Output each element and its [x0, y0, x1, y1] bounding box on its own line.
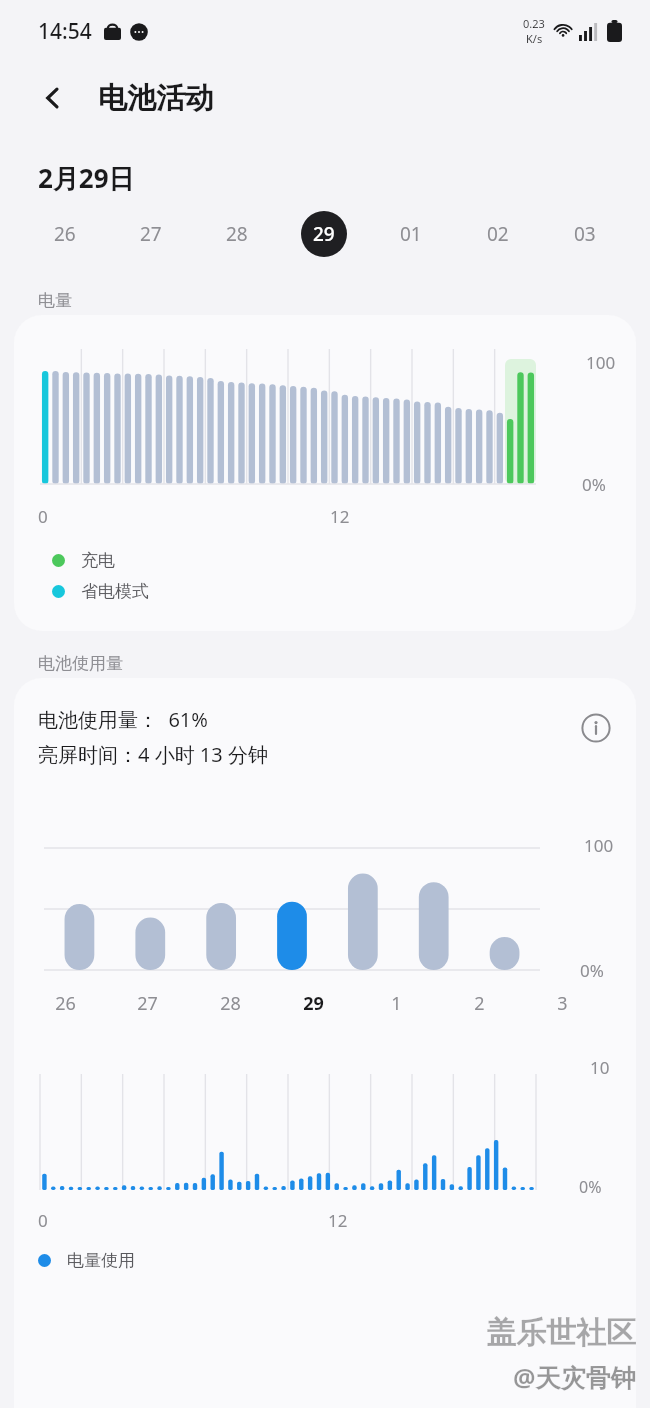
staticText: 100: [586, 351, 616, 374]
staticText: 28: [226, 221, 248, 247]
staticText: 3: [557, 991, 568, 1016]
staticText: 27: [140, 221, 162, 247]
button[interactable]: 01: [367, 196, 454, 272]
staticText: 0%: [582, 473, 606, 496]
staticText: 100: [584, 834, 614, 857]
staticText: 29: [313, 221, 335, 247]
staticText: K/s: [526, 31, 543, 46]
button[interactable]: 02: [454, 196, 541, 272]
staticText: 27: [137, 991, 158, 1016]
staticText: 1: [391, 991, 402, 1016]
staticText: 0%: [580, 959, 604, 982]
staticText: 电池使用量: [38, 653, 123, 674]
staticText: 电池活动: [98, 80, 214, 117]
staticText: 28: [220, 991, 241, 1016]
button[interactable]: Back: [30, 75, 76, 121]
button[interactable]: 29: [280, 196, 367, 272]
button[interactable]: 27: [108, 196, 194, 272]
staticText: 03: [574, 221, 596, 247]
staticText: 电量使用: [67, 1250, 135, 1271]
staticText: 0%: [579, 1176, 602, 1198]
staticText: 2: [474, 991, 485, 1016]
staticText: 电量: [38, 290, 72, 311]
staticText: 省电模式: [81, 581, 149, 602]
button[interactable]: 100: [14, 315, 636, 631]
staticText: 14:54: [38, 17, 92, 46]
staticText: 26: [55, 991, 76, 1016]
staticText: 26: [54, 221, 76, 247]
button[interactable]: 28: [194, 196, 280, 272]
button[interactable]: 26: [22, 196, 108, 272]
staticText: 0: [38, 1209, 48, 1232]
staticText: 0.23: [523, 16, 545, 31]
button[interactable]: 03: [541, 196, 628, 272]
staticText: 12: [330, 505, 350, 528]
staticText: 电池使用量： 61%: [38, 706, 208, 733]
staticText: 0: [38, 505, 48, 528]
staticText: 10: [590, 1056, 610, 1079]
staticText: 2月29日: [38, 160, 135, 196]
staticText: 29: [303, 991, 324, 1016]
staticText: 盖乐世社区: [486, 1314, 636, 1352]
staticText: 充电: [81, 550, 115, 571]
button[interactable]: Info: [574, 706, 618, 750]
staticText: 02: [487, 221, 509, 247]
staticText: 12: [328, 1209, 348, 1232]
staticText: @天灾骨钟: [513, 1360, 636, 1394]
staticText: 01: [400, 221, 422, 247]
staticText: 亮屏时间：4 小时 13 分钟: [38, 741, 268, 768]
